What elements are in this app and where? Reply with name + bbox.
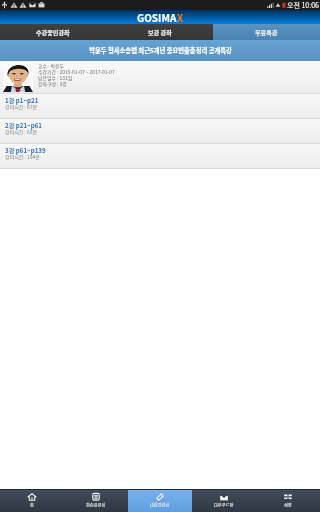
staticText: 3강 p61~p139 [5,146,46,155]
button[interactable]: 수강중인강좌 [0,24,106,40]
button[interactable]: 1강 p1~p21 [0,93,320,118]
button[interactable]: Downloads [192,490,256,512]
staticText: 박윤두 형사소송법 최근5개년 중요빈출총정리 공개특강 [89,46,232,55]
staticText: 다운로드함 [214,502,234,507]
staticText: GOSIMA [137,10,177,24]
staticText: 수강기간 : 2015-01-07 ~ 2017-01-07 [38,68,115,75]
staticText: 2강 p21~p61 [5,121,42,130]
button[interactable]: My classroom [128,490,192,512]
staticText: 강의시간 : 104분 [5,153,40,160]
staticText: 교수 : 박윤두 [38,62,65,69]
staticText: 강의시간 : 67분 [5,103,38,110]
button[interactable]: Materials [64,490,128,512]
button[interactable]: 2강 p21~p61 [0,118,320,143]
staticText: 무료특강 [255,28,278,37]
staticText: 오전 10:06 [287,0,319,10]
button[interactable]: Home [0,490,64,512]
staticText: 수강중인강좌 [36,28,70,37]
staticText: X [177,10,184,24]
staticText: 강좌구성 : 3강 [38,80,67,87]
staticText: 설정 [284,502,292,507]
staticText: 강의시간 : 65분 [5,128,38,135]
staticText: 1강 p1~p21 [5,96,39,105]
staticText: 남은일수 : 131일 [38,74,73,81]
button[interactable]: 무료특강 [213,24,320,40]
button[interactable]: 3강 p61~p139 [0,143,320,168]
staticText: 보강 강좌 [148,28,172,37]
staticText: 홈 [30,502,34,507]
staticText: 나의강의실 [150,502,170,507]
button[interactable]: 보강 강좌 [106,24,213,40]
button[interactable]: Settings [256,490,320,512]
staticText: 학습자료실 [86,502,106,507]
